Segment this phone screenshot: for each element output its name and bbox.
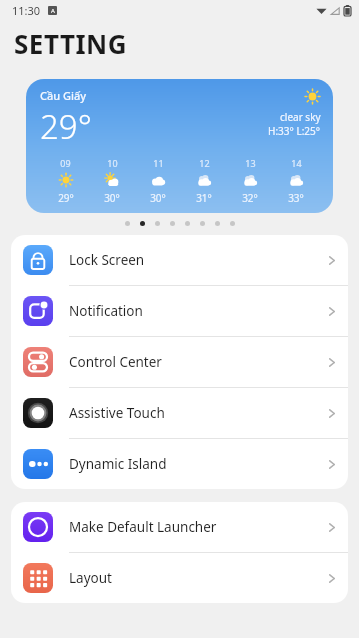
staticText: 30° xyxy=(104,191,120,205)
staticText: Cầu Giấy xyxy=(40,88,87,103)
staticText: 30° xyxy=(150,191,166,205)
staticText: Dynamic Island xyxy=(69,455,328,473)
staticText: 12 xyxy=(199,157,210,169)
staticText: 13 xyxy=(245,157,256,169)
button[interactable]: Make Default Launcher xyxy=(11,502,348,552)
staticText: Control Center xyxy=(69,353,328,371)
button[interactable]: Notification xyxy=(11,286,348,336)
staticText: Notification xyxy=(69,302,328,320)
button[interactable]: Control Center xyxy=(11,337,348,387)
staticText: 33° xyxy=(288,191,304,205)
staticText: clear sky xyxy=(280,110,321,124)
staticText: 11 xyxy=(153,157,164,169)
staticText: Lock Screen xyxy=(69,251,328,269)
staticText: 29° xyxy=(40,104,92,149)
button[interactable]: Layout xyxy=(11,553,348,603)
button[interactable]: Cầu Giấy xyxy=(26,79,333,213)
staticText: 31° xyxy=(196,191,212,205)
staticText: 29° xyxy=(58,191,74,205)
staticText: 09 xyxy=(60,157,71,169)
staticText: 11:30 xyxy=(12,3,41,18)
staticText: A xyxy=(51,7,55,15)
button[interactable]: Lock Screen xyxy=(11,235,348,285)
staticText: Assistive Touch xyxy=(69,404,328,422)
button[interactable]: Dynamic Island xyxy=(11,439,348,489)
staticText: Layout xyxy=(69,569,328,587)
staticText: 10 xyxy=(107,157,118,169)
staticText: 14 xyxy=(291,157,302,169)
staticText: Make Default Launcher xyxy=(69,518,328,536)
staticText: 32° xyxy=(242,191,258,205)
staticText: H:33° L:25° xyxy=(268,124,321,138)
button[interactable]: Assistive Touch xyxy=(11,388,348,438)
staticText: SETTING xyxy=(14,26,127,61)
